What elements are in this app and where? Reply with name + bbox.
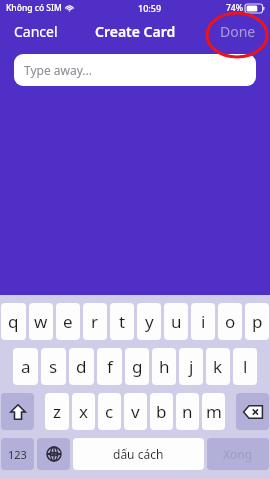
staticText: f: [107, 355, 113, 378]
button[interactable]: q: [1, 303, 26, 340]
button[interactable]: 123: [1, 438, 34, 470]
button[interactable]: dấu cách: [73, 438, 204, 470]
staticText: Không có SIM: [6, 2, 62, 14]
staticText: r: [91, 310, 99, 333]
button[interactable]: x: [72, 393, 95, 430]
button[interactable]: Delete: [236, 393, 269, 430]
button[interactable]: m: [202, 393, 225, 430]
staticText: Done: [220, 22, 256, 41]
button[interactable]: g: [125, 348, 149, 385]
staticText: d: [76, 355, 87, 378]
button[interactable]: Done: [206, 18, 270, 45]
staticText: n: [182, 400, 193, 423]
button[interactable]: l: [233, 348, 257, 385]
button[interactable]: n: [176, 393, 199, 430]
staticText: k: [213, 355, 223, 378]
staticText: u: [171, 310, 182, 333]
button[interactable]: Cancel: [0, 18, 72, 45]
button[interactable]: r: [83, 303, 107, 340]
button[interactable]: t: [110, 303, 134, 340]
staticText: i: [201, 310, 206, 333]
staticText: Create Card: [95, 22, 176, 41]
button[interactable]: Change keyboard: [37, 438, 70, 470]
button[interactable]: o: [218, 303, 242, 340]
button[interactable]: h: [152, 348, 176, 385]
staticText: c: [105, 400, 114, 423]
button[interactable]: v: [124, 393, 147, 430]
staticText: Type away...: [24, 62, 93, 78]
staticText: 74%: [226, 2, 243, 14]
staticText: g: [132, 355, 143, 378]
staticText: dấu cách: [113, 446, 164, 462]
button[interactable]: j: [179, 348, 203, 385]
staticText: z: [53, 400, 61, 423]
button[interactable]: u: [164, 303, 188, 340]
button[interactable]: f: [97, 348, 122, 385]
staticText: s: [49, 355, 58, 378]
button[interactable]: Shift: [1, 393, 34, 430]
staticText: o: [225, 310, 236, 333]
button[interactable]: b: [150, 393, 173, 430]
staticText: x: [79, 400, 88, 423]
button[interactable]: i: [191, 303, 215, 340]
staticText: j: [189, 355, 194, 378]
staticText: y: [145, 310, 154, 333]
button[interactable]: Type away...: [14, 54, 256, 86]
button[interactable]: d: [69, 348, 94, 385]
staticText: e: [63, 310, 73, 333]
staticText: t: [119, 310, 126, 333]
staticText: 10:59: [138, 2, 162, 14]
button[interactable]: p: [245, 303, 269, 340]
staticText: 123: [8, 447, 27, 462]
staticText: p: [252, 310, 263, 333]
staticText: b: [156, 400, 167, 423]
button[interactable]: c: [98, 393, 121, 430]
button[interactable]: w: [29, 303, 53, 340]
button[interactable]: Xong: [207, 438, 269, 470]
staticText: w: [34, 310, 48, 333]
button[interactable]: a: [13, 348, 38, 385]
button[interactable]: s: [41, 348, 66, 385]
staticText: v: [131, 400, 140, 423]
staticText: q: [8, 310, 19, 333]
staticText: h: [159, 355, 170, 378]
staticText: m: [206, 400, 222, 423]
staticText: a: [21, 355, 31, 378]
staticText: Xong: [223, 446, 253, 462]
button[interactable]: y: [137, 303, 161, 340]
button[interactable]: z: [45, 393, 69, 430]
button[interactable]: e: [56, 303, 80, 340]
staticText: l: [243, 355, 248, 378]
staticText: Cancel: [14, 22, 58, 41]
button[interactable]: k: [206, 348, 230, 385]
